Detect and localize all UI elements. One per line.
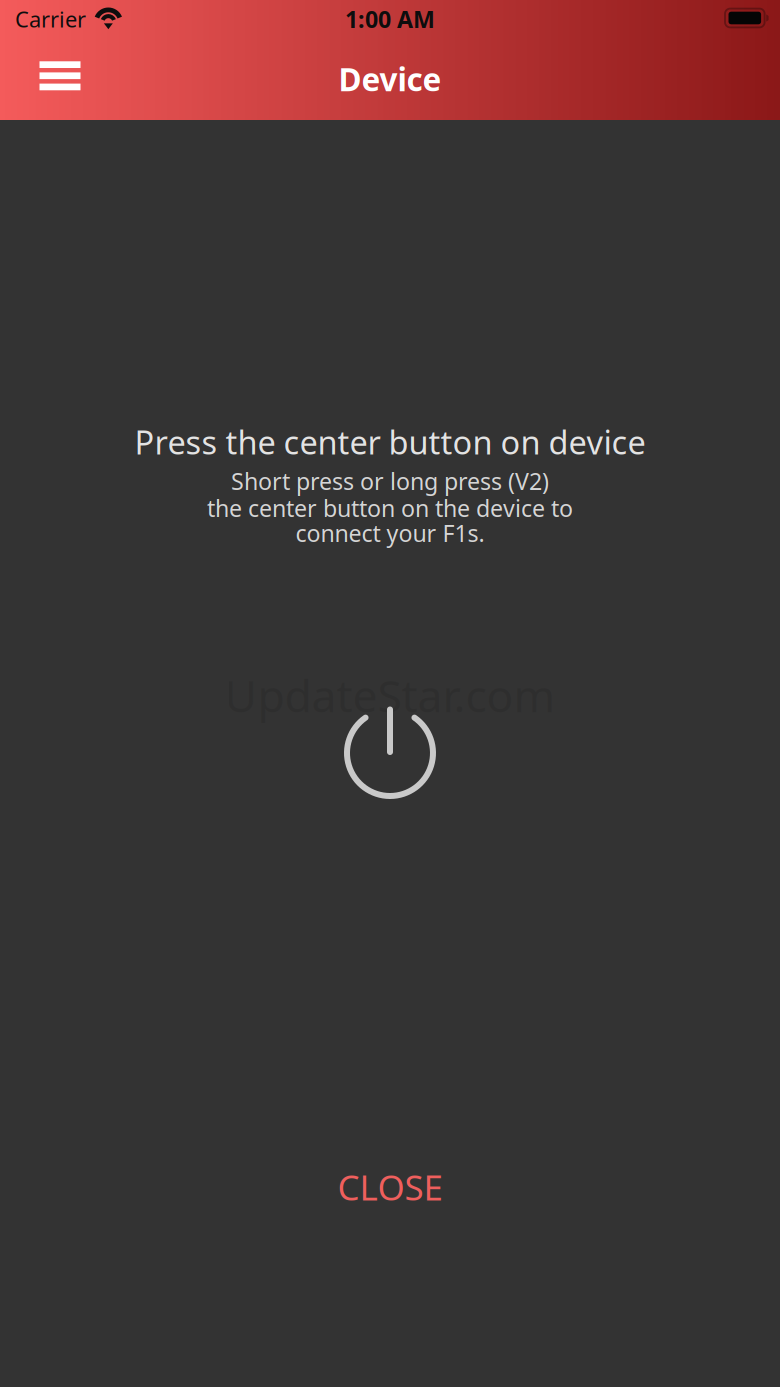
staticText: Carrier	[15, 4, 86, 33]
staticText: CLOSE	[337, 1164, 442, 1210]
staticText: the center button on the device to	[207, 493, 573, 523]
button[interactable]: CLOSE	[270, 1157, 510, 1217]
staticText: UpdateStar.com	[224, 665, 555, 724]
staticText: 1:00 AM	[345, 4, 435, 34]
button[interactable]: Menu	[20, 45, 100, 107]
staticText: connect your F1s.	[295, 518, 484, 548]
staticText: Short press or long press (V2)	[231, 466, 549, 496]
staticText: Press the center button on device	[134, 420, 645, 464]
staticText: Device	[338, 58, 441, 100]
